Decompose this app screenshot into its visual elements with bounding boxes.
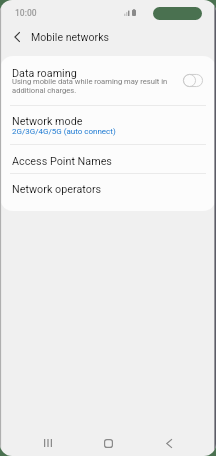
button[interactable]: Home (90, 430, 126, 456)
staticText: Mobile networks (31, 31, 109, 43)
button[interactable]: Recent apps (30, 430, 66, 456)
button[interactable]: Data roaming (0, 56, 216, 105)
button[interactable]: Navigate up (4, 25, 29, 49)
button[interactable]: Back (151, 430, 187, 456)
button[interactable]: Network operators (0, 173, 216, 211)
staticText: Network operators (12, 183, 102, 196)
button[interactable]: Network mode (0, 105, 216, 144)
staticText: 2G/3G/4G/5G (auto connect) (12, 127, 116, 136)
staticText: Access Point Names (12, 155, 112, 168)
staticText: 10:00 (15, 8, 37, 18)
staticText: Network mode (12, 115, 83, 128)
button[interactable]: Access Point Names (0, 144, 216, 173)
staticText: Using mobile data while roaming may resu… (12, 77, 168, 95)
staticText: Data roaming (12, 67, 77, 80)
